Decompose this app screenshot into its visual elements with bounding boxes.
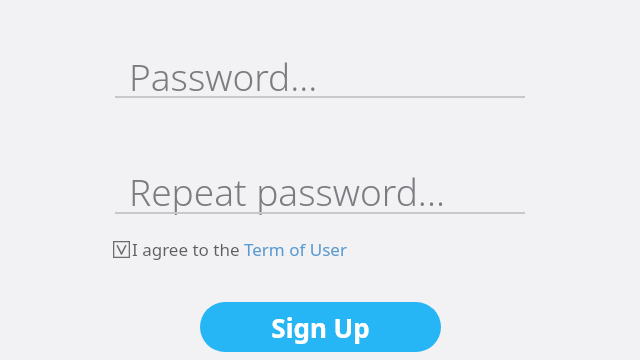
- other: I agree checkbox, checked: [113, 241, 130, 258]
- button[interactable]: Term of User: [244, 238, 347, 261]
- button[interactable]: Sign Up: [200, 302, 441, 352]
- button[interactable]: I agree checkbox, checked: [113, 238, 347, 261]
- staticText: Password...: [129, 51, 318, 101]
- staticText: I agree to the: [132, 238, 244, 261]
- staticText: Repeat password...: [129, 166, 445, 216]
- staticText: Sign Up: [271, 310, 370, 345]
